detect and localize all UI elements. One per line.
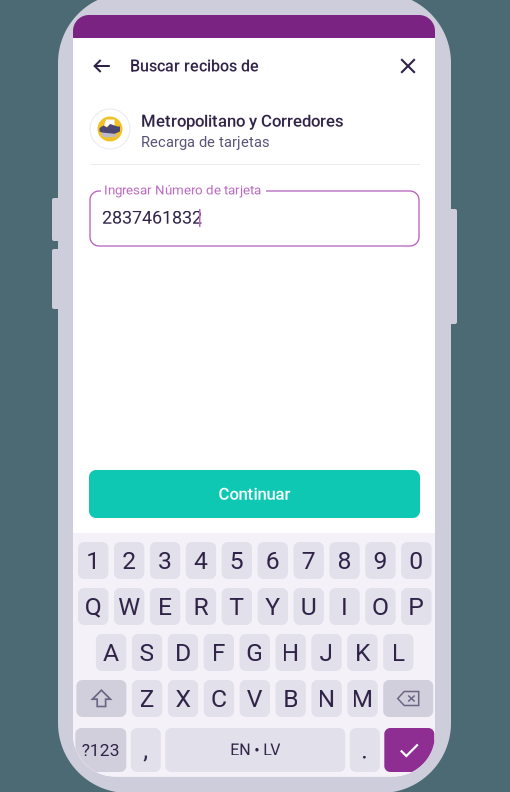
staticText: 2837461832 xyxy=(102,207,202,228)
button[interactable]: B xyxy=(275,680,306,717)
button[interactable]: T xyxy=(222,588,252,625)
staticText: C xyxy=(211,684,227,713)
staticText: V xyxy=(247,684,263,713)
button[interactable]: Close xyxy=(386,44,430,88)
staticText: 3 xyxy=(158,546,172,575)
staticText: W xyxy=(118,592,140,621)
button[interactable]: V xyxy=(240,680,270,717)
button[interactable]: Z xyxy=(132,680,162,717)
staticText: B xyxy=(283,684,298,713)
button[interactable]: ?123 xyxy=(75,728,126,772)
button[interactable]: 2 xyxy=(114,542,144,579)
staticText: P xyxy=(408,592,424,621)
staticText: G xyxy=(246,638,263,667)
button[interactable]: S xyxy=(132,634,162,671)
button[interactable]: I xyxy=(329,588,360,625)
staticText: Recarga de tarjetas xyxy=(141,133,270,151)
staticText: E xyxy=(158,592,172,621)
button[interactable]: X xyxy=(168,680,198,717)
staticText: 2 xyxy=(122,546,136,575)
staticText: 0 xyxy=(409,546,423,575)
button[interactable]: A xyxy=(96,634,126,671)
staticText: H xyxy=(282,638,300,667)
staticText: 7 xyxy=(302,546,316,575)
button[interactable]: EN • LV xyxy=(165,728,345,772)
staticText: EN • LV xyxy=(230,741,280,759)
button[interactable]: . xyxy=(350,728,380,772)
button[interactable]: 4 xyxy=(186,542,216,579)
button[interactable]: G xyxy=(239,634,270,671)
staticText: Y xyxy=(265,592,280,621)
staticText: , xyxy=(143,735,148,764)
button[interactable]: H xyxy=(275,634,306,671)
staticText: Metropolitano y Corredores xyxy=(141,111,344,131)
button[interactable]: R xyxy=(186,588,216,625)
staticText: 5 xyxy=(230,546,244,575)
staticText: J xyxy=(319,638,333,667)
button[interactable]: 6 xyxy=(258,542,288,579)
staticText: I xyxy=(341,592,348,621)
staticText: 4 xyxy=(194,546,208,575)
staticText: N xyxy=(318,684,336,713)
button[interactable]: W xyxy=(114,588,144,625)
staticText: Buscar recibos de xyxy=(130,57,259,75)
button[interactable]: 9 xyxy=(365,542,396,579)
button[interactable]: 7 xyxy=(293,542,324,579)
staticText: 9 xyxy=(373,546,387,575)
staticText: Ingresar Número de tarjeta xyxy=(104,182,261,198)
button[interactable]: 8 xyxy=(329,542,360,579)
staticText: 1 xyxy=(86,546,100,575)
staticText: S xyxy=(139,638,154,667)
button[interactable]: Buscar recibos de xyxy=(130,44,320,88)
button[interactable]: J xyxy=(311,634,342,671)
staticText: U xyxy=(301,592,317,621)
button[interactable]: Continuar xyxy=(89,470,420,518)
staticText: Z xyxy=(140,684,155,713)
button[interactable]: P xyxy=(401,588,431,625)
button[interactable]: O xyxy=(365,588,396,625)
staticText: 8 xyxy=(338,546,352,575)
button[interactable]: N xyxy=(311,680,342,717)
staticText: T xyxy=(229,592,244,621)
button[interactable]: Backspace xyxy=(383,680,433,717)
staticText: X xyxy=(175,684,190,713)
staticText: O xyxy=(372,592,389,621)
button[interactable]: K xyxy=(347,634,378,671)
button[interactable]: Enter xyxy=(384,728,434,772)
button[interactable]: D xyxy=(168,634,198,671)
button[interactable]: L xyxy=(383,634,413,671)
button[interactable]: 5 xyxy=(222,542,252,579)
staticText: . xyxy=(361,735,368,764)
button[interactable]: Back xyxy=(80,44,124,88)
button[interactable]: E xyxy=(150,588,180,625)
button[interactable]: 0 xyxy=(401,542,431,579)
button[interactable]: Q xyxy=(78,588,108,625)
staticText: M xyxy=(351,684,373,713)
staticText: ?123 xyxy=(82,740,120,760)
staticText: F xyxy=(212,638,226,667)
staticText: Q xyxy=(85,592,102,621)
button[interactable]: F xyxy=(204,634,234,671)
staticText: K xyxy=(355,638,370,667)
button[interactable]: C xyxy=(204,680,234,717)
staticText: Continuar xyxy=(218,484,290,504)
staticText: A xyxy=(103,638,119,667)
button[interactable]: 3 xyxy=(150,542,180,579)
button[interactable]: U xyxy=(293,588,324,625)
button[interactable]: 1 xyxy=(78,542,108,579)
button[interactable]: Y xyxy=(258,588,288,625)
button[interactable]: , xyxy=(131,728,161,772)
staticText: D xyxy=(175,638,191,667)
button[interactable]: M xyxy=(347,680,378,717)
staticText: 6 xyxy=(266,546,280,575)
staticText: R xyxy=(193,592,208,621)
staticText: L xyxy=(392,638,405,667)
button[interactable]: Shift xyxy=(76,680,126,717)
